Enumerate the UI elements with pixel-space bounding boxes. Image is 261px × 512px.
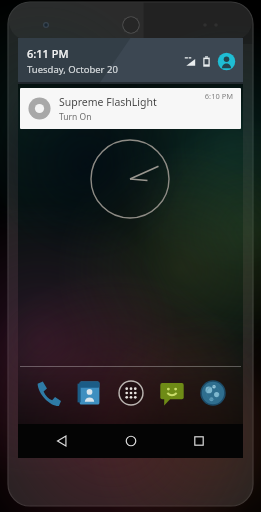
staticText: Supreme FlashLight — [59, 95, 157, 109]
staticText: 6:10 PM — [204, 91, 233, 101]
button[interactable]: Home — [106, 424, 156, 458]
button[interactable]: Messaging — [155, 376, 189, 410]
staticText: 6:11 PM — [27, 46, 69, 61]
button[interactable]: Mobile signal 3G — [184, 55, 197, 68]
button[interactable]: Supreme FlashLight — [20, 88, 241, 129]
button[interactable]: Back — [37, 424, 87, 458]
button[interactable]: User profile — [217, 52, 236, 71]
staticText: Tuesday, October 20 — [27, 63, 118, 76]
button[interactable]: Battery — [202, 55, 211, 68]
button[interactable]: Clock widget — [85, 134, 175, 224]
button[interactable]: Phone — [31, 376, 65, 410]
button[interactable]: Contacts — [72, 376, 106, 410]
button[interactable]: Browser — [196, 376, 230, 410]
staticText: Turn On — [59, 111, 92, 123]
button[interactable]: Apps — [114, 376, 148, 410]
button[interactable]: Recents — [174, 424, 224, 458]
